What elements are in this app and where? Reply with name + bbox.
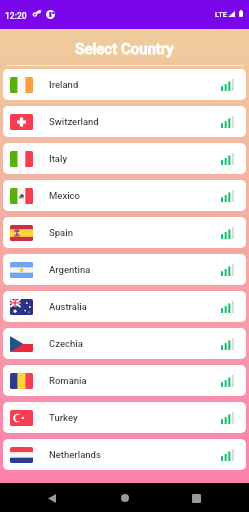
button[interactable]: Mexico [3,180,246,211]
button[interactable]: Australia [3,291,246,322]
button[interactable]: Romania [3,365,246,396]
staticText: Czechia [49,338,83,349]
button[interactable]: Argentina [3,254,246,285]
button[interactable]: Netherlands [3,439,246,470]
staticText: Mexico [49,190,80,201]
button[interactable]: Home [111,484,139,512]
button[interactable]: Italy [3,143,246,174]
button[interactable]: Spain [3,217,246,248]
button[interactable]: Turkey [3,402,246,433]
staticText: Netherlands [49,449,101,460]
staticText: Argentina [49,264,91,275]
button[interactable]: Back [38,484,66,512]
staticText: LTE [215,10,227,19]
staticText: 12:20 [5,11,27,21]
button[interactable]: Switzerland [3,106,246,137]
staticText: Australia [49,301,87,312]
staticText: Spain [49,227,73,238]
staticText: Italy [49,153,68,164]
button[interactable]: Czechia [3,328,246,359]
staticText: Switzerland [49,116,99,127]
staticText: Select Country [75,40,174,58]
staticText: Turkey [49,412,78,423]
staticText: Ireland [49,79,79,90]
button[interactable]: Recents [182,484,210,512]
staticText: Romania [49,375,87,386]
button[interactable]: Ireland [3,69,246,100]
